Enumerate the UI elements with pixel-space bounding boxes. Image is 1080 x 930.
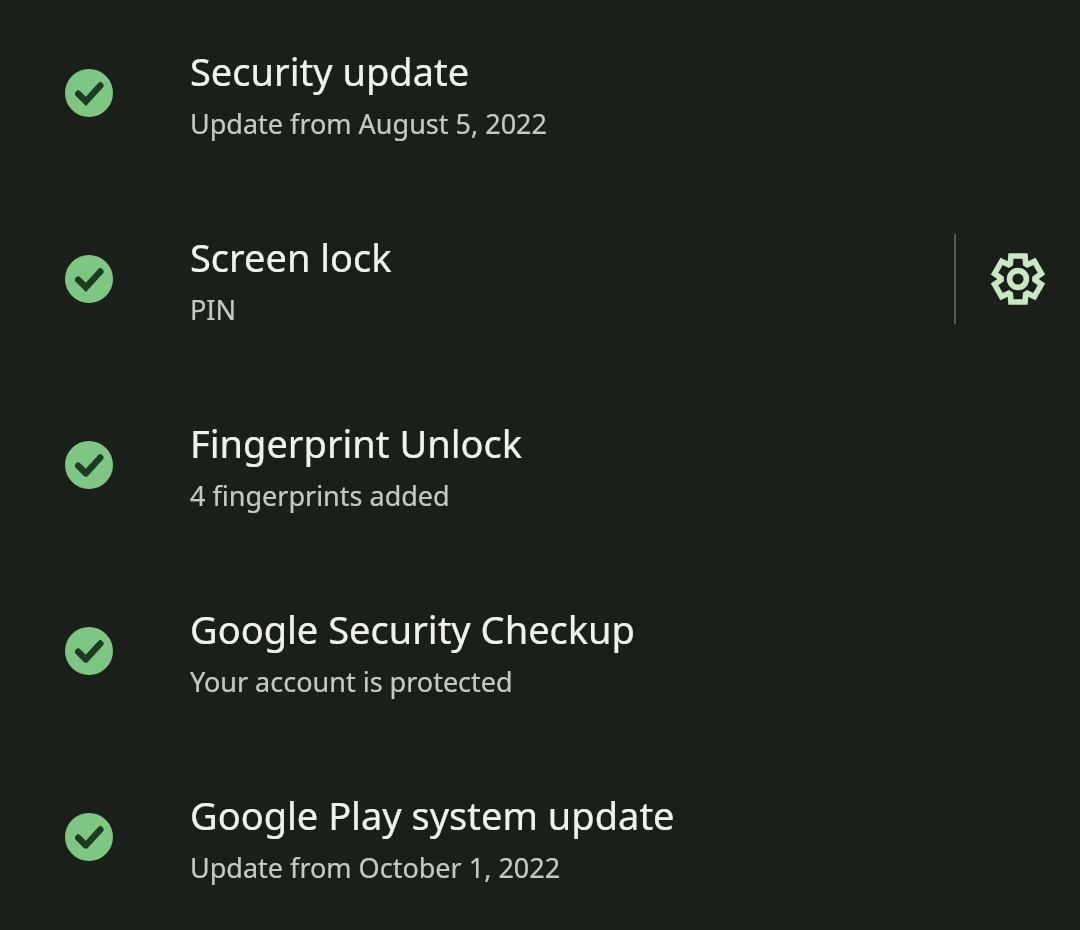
staticText: Update from August 5, 2022 [190,105,547,142]
button[interactable]: Google Security Checkup [0,558,1080,744]
button[interactable]: Screen lock [0,186,1080,372]
button[interactable]: Google Play system update [0,744,1080,930]
staticText: Google Play system update [190,789,675,841]
staticText: Security update [190,45,470,97]
staticText: Google Security Checkup [190,603,635,655]
staticText: Update from October 1, 2022 [190,849,561,886]
button[interactable]: Screen lock settings [956,186,1080,372]
staticText: Fingerprint Unlock [190,417,523,469]
staticText: PIN [190,291,237,328]
button[interactable]: Security update [0,0,1080,186]
staticText: Your account is protected [190,663,513,700]
staticText: 4 fingerprints added [190,477,450,514]
staticText: Screen lock [190,231,392,283]
button[interactable]: Fingerprint Unlock [0,372,1080,558]
